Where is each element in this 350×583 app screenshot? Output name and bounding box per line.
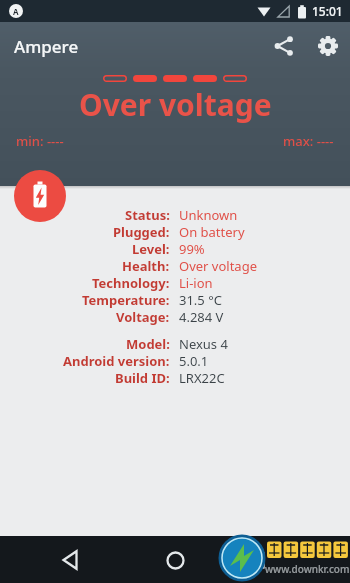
staticText: 5.0.1 — [179, 352, 209, 369]
staticText: Plugged: — [113, 223, 170, 240]
staticText: Model: — [126, 335, 170, 352]
staticText: 4.284 V — [179, 308, 224, 325]
staticText: max: ---- — [283, 132, 334, 150]
staticText: Li-ion — [179, 274, 213, 291]
staticText: 15:01 — [312, 3, 343, 19]
staticText: 31.5 °C — [179, 291, 222, 308]
staticText: Health: — [122, 257, 170, 274]
staticText: LRX22C — [179, 369, 225, 386]
staticText: On battery — [179, 223, 245, 240]
staticText: Temperature: — [82, 291, 170, 308]
staticText: Voltage: — [116, 308, 170, 325]
staticText: Nexus 4 — [179, 335, 228, 352]
staticText: Unknown — [179, 206, 238, 223]
staticText: www.downkr.com — [265, 562, 350, 576]
staticText: Ampere — [14, 35, 79, 58]
staticText: Technology: — [92, 274, 170, 291]
button[interactable] — [237, 541, 275, 579]
button[interactable] — [52, 541, 90, 579]
staticText: Over voltage — [79, 84, 272, 125]
staticText: Over voltage — [179, 257, 257, 274]
staticText: 99% — [179, 240, 205, 257]
staticText: A — [13, 6, 19, 17]
button[interactable] — [268, 30, 300, 62]
staticText: Status: — [125, 206, 170, 223]
button[interactable] — [156, 541, 194, 579]
staticText: min: ---- — [16, 132, 64, 150]
staticText: Android version: — [63, 352, 170, 369]
staticText: Level: — [132, 240, 170, 257]
staticText: Build ID: — [115, 369, 170, 386]
button[interactable] — [312, 30, 344, 62]
button[interactable] — [14, 170, 66, 222]
